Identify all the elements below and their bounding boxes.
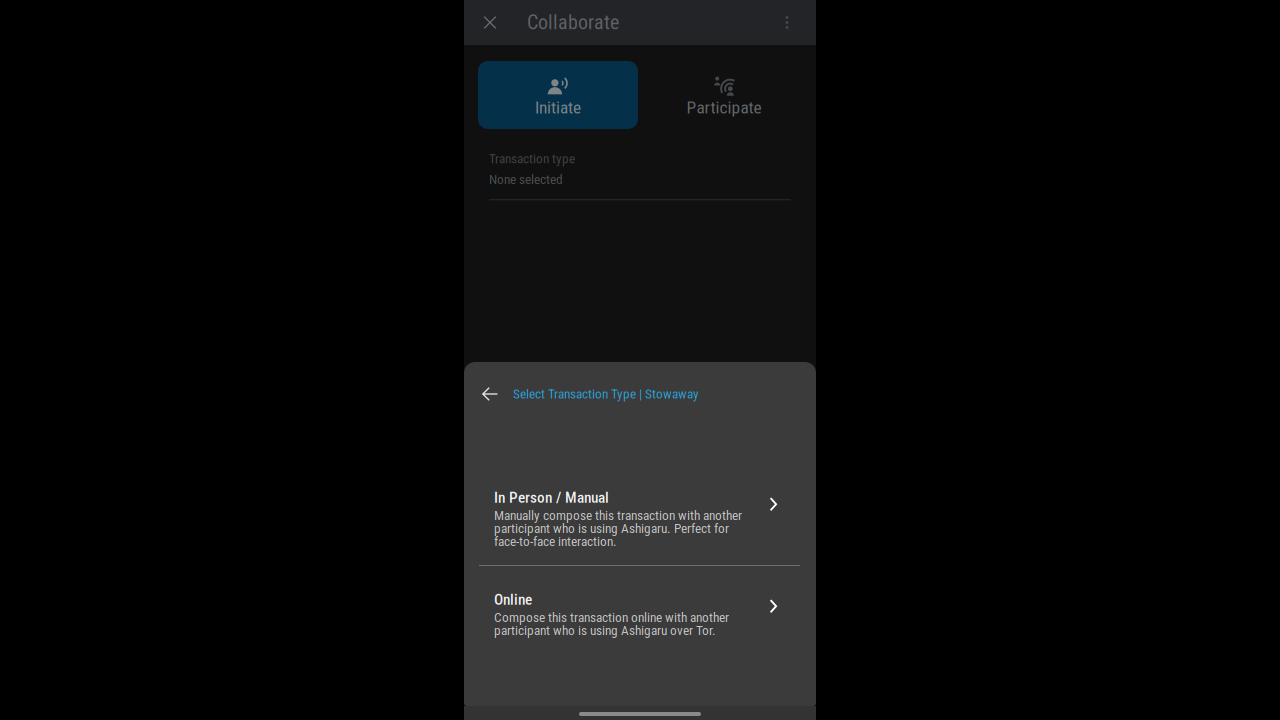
button[interactable]: Close xyxy=(467,0,513,45)
staticText: participant who is using Ashigaru over T… xyxy=(494,623,716,638)
button[interactable]: In Person / Manual xyxy=(464,490,816,548)
button[interactable]: Back xyxy=(473,379,507,409)
staticText: participant who is using Ashigaru. Perfe… xyxy=(494,521,729,536)
staticText: Initiate xyxy=(535,97,581,118)
staticText: In Person / Manual xyxy=(494,488,609,506)
staticText: Collaborate xyxy=(527,11,619,34)
staticText: Participate xyxy=(686,97,761,118)
button[interactable]: Initiate xyxy=(478,61,638,129)
staticText: Transaction type xyxy=(489,151,575,167)
button[interactable]: Online xyxy=(464,592,816,638)
button[interactable]: Participate xyxy=(644,61,804,129)
staticText: Online xyxy=(494,590,532,608)
staticText: None selected xyxy=(489,172,563,187)
button[interactable]: More options xyxy=(766,0,808,45)
staticText: Compose this transaction online with ano… xyxy=(494,610,729,625)
button[interactable]: Select Transaction Type | Stowaway xyxy=(513,379,699,409)
staticText: face-to-face interaction. xyxy=(494,534,617,549)
staticText: Manually compose this transaction with a… xyxy=(494,508,742,523)
staticText: Select Transaction Type | Stowaway xyxy=(513,386,699,402)
